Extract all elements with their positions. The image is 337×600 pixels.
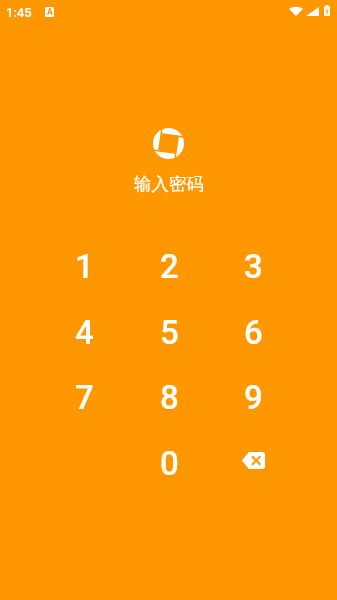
staticText: 9 <box>244 378 263 417</box>
staticText: 5 <box>160 313 179 352</box>
staticText: 4 <box>75 313 94 352</box>
button[interactable]: 9 <box>211 365 295 430</box>
button[interactable]: 2 <box>127 234 211 299</box>
button[interactable]: 6 <box>211 300 295 365</box>
button[interactable]: 0 <box>127 431 211 496</box>
staticText: A <box>47 7 53 17</box>
button[interactable]: 1 <box>42 234 126 299</box>
staticText: 7 <box>75 378 94 417</box>
button[interactable]: 3 <box>211 234 295 299</box>
staticText: 1 <box>75 247 94 286</box>
button[interactable]: 7 <box>42 365 126 430</box>
button[interactable]: 8 <box>127 365 211 430</box>
staticText: 6 <box>244 313 263 352</box>
button[interactable]: 4 <box>42 300 126 365</box>
staticText: 0 <box>160 444 179 483</box>
button[interactable]: 5 <box>127 300 211 365</box>
staticText: 1:45 <box>6 5 32 20</box>
button[interactable]: Delete <box>211 431 295 496</box>
staticText: 2 <box>160 247 179 286</box>
staticText: 8 <box>160 378 179 417</box>
staticText: 3 <box>244 247 263 286</box>
staticText: 输入密码 <box>134 173 204 195</box>
